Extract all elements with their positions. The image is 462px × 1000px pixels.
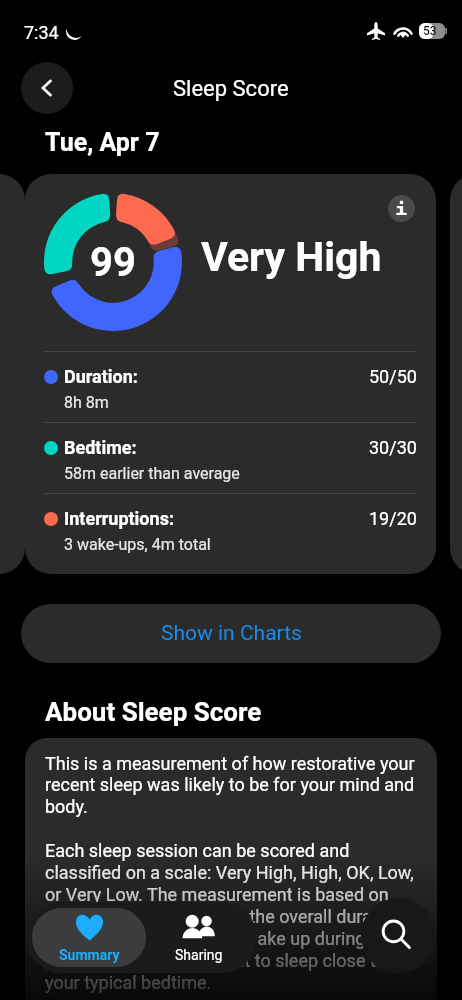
staticText: Bedtime: — [64, 437, 137, 458]
staticText: Tue, Apr 7 — [45, 128, 160, 157]
button[interactable]: Summary — [32, 908, 146, 967]
staticText: 3 wake-ups, 4m total — [64, 535, 211, 554]
button[interactable]: Duration: — [25, 351, 436, 422]
staticText: 19/20 — [369, 508, 417, 529]
staticText: Very High — [201, 233, 382, 281]
button[interactable]: Search — [361, 898, 436, 973]
button[interactable]: Interruptions: — [25, 493, 436, 564]
button[interactable]: Back — [21, 62, 73, 114]
staticText: About Sleep Score — [45, 697, 262, 727]
button[interactable]: Bedtime: — [25, 422, 436, 493]
staticText: 53 — [423, 24, 437, 38]
staticText: 50/50 — [369, 366, 417, 387]
staticText: Summary — [59, 947, 120, 963]
staticText: 99 — [90, 239, 136, 286]
staticText: 30/30 — [369, 437, 417, 458]
button[interactable]: Show in Charts — [21, 604, 441, 663]
staticText: 7:34 — [24, 22, 59, 43]
staticText: Interruptions: — [64, 508, 174, 529]
staticText: This is a measurement of how restorative… — [45, 753, 417, 994]
staticText: Duration: — [64, 366, 138, 387]
button[interactable]: Info — [388, 195, 415, 222]
button[interactable]: Sharing — [146, 908, 251, 967]
staticText: Sleep Score — [173, 76, 289, 102]
staticText: Sharing — [175, 947, 223, 963]
staticText: Show in Charts — [161, 621, 302, 646]
staticText: 8h 8m — [64, 393, 109, 412]
staticText: 58m earlier than average — [64, 464, 240, 483]
